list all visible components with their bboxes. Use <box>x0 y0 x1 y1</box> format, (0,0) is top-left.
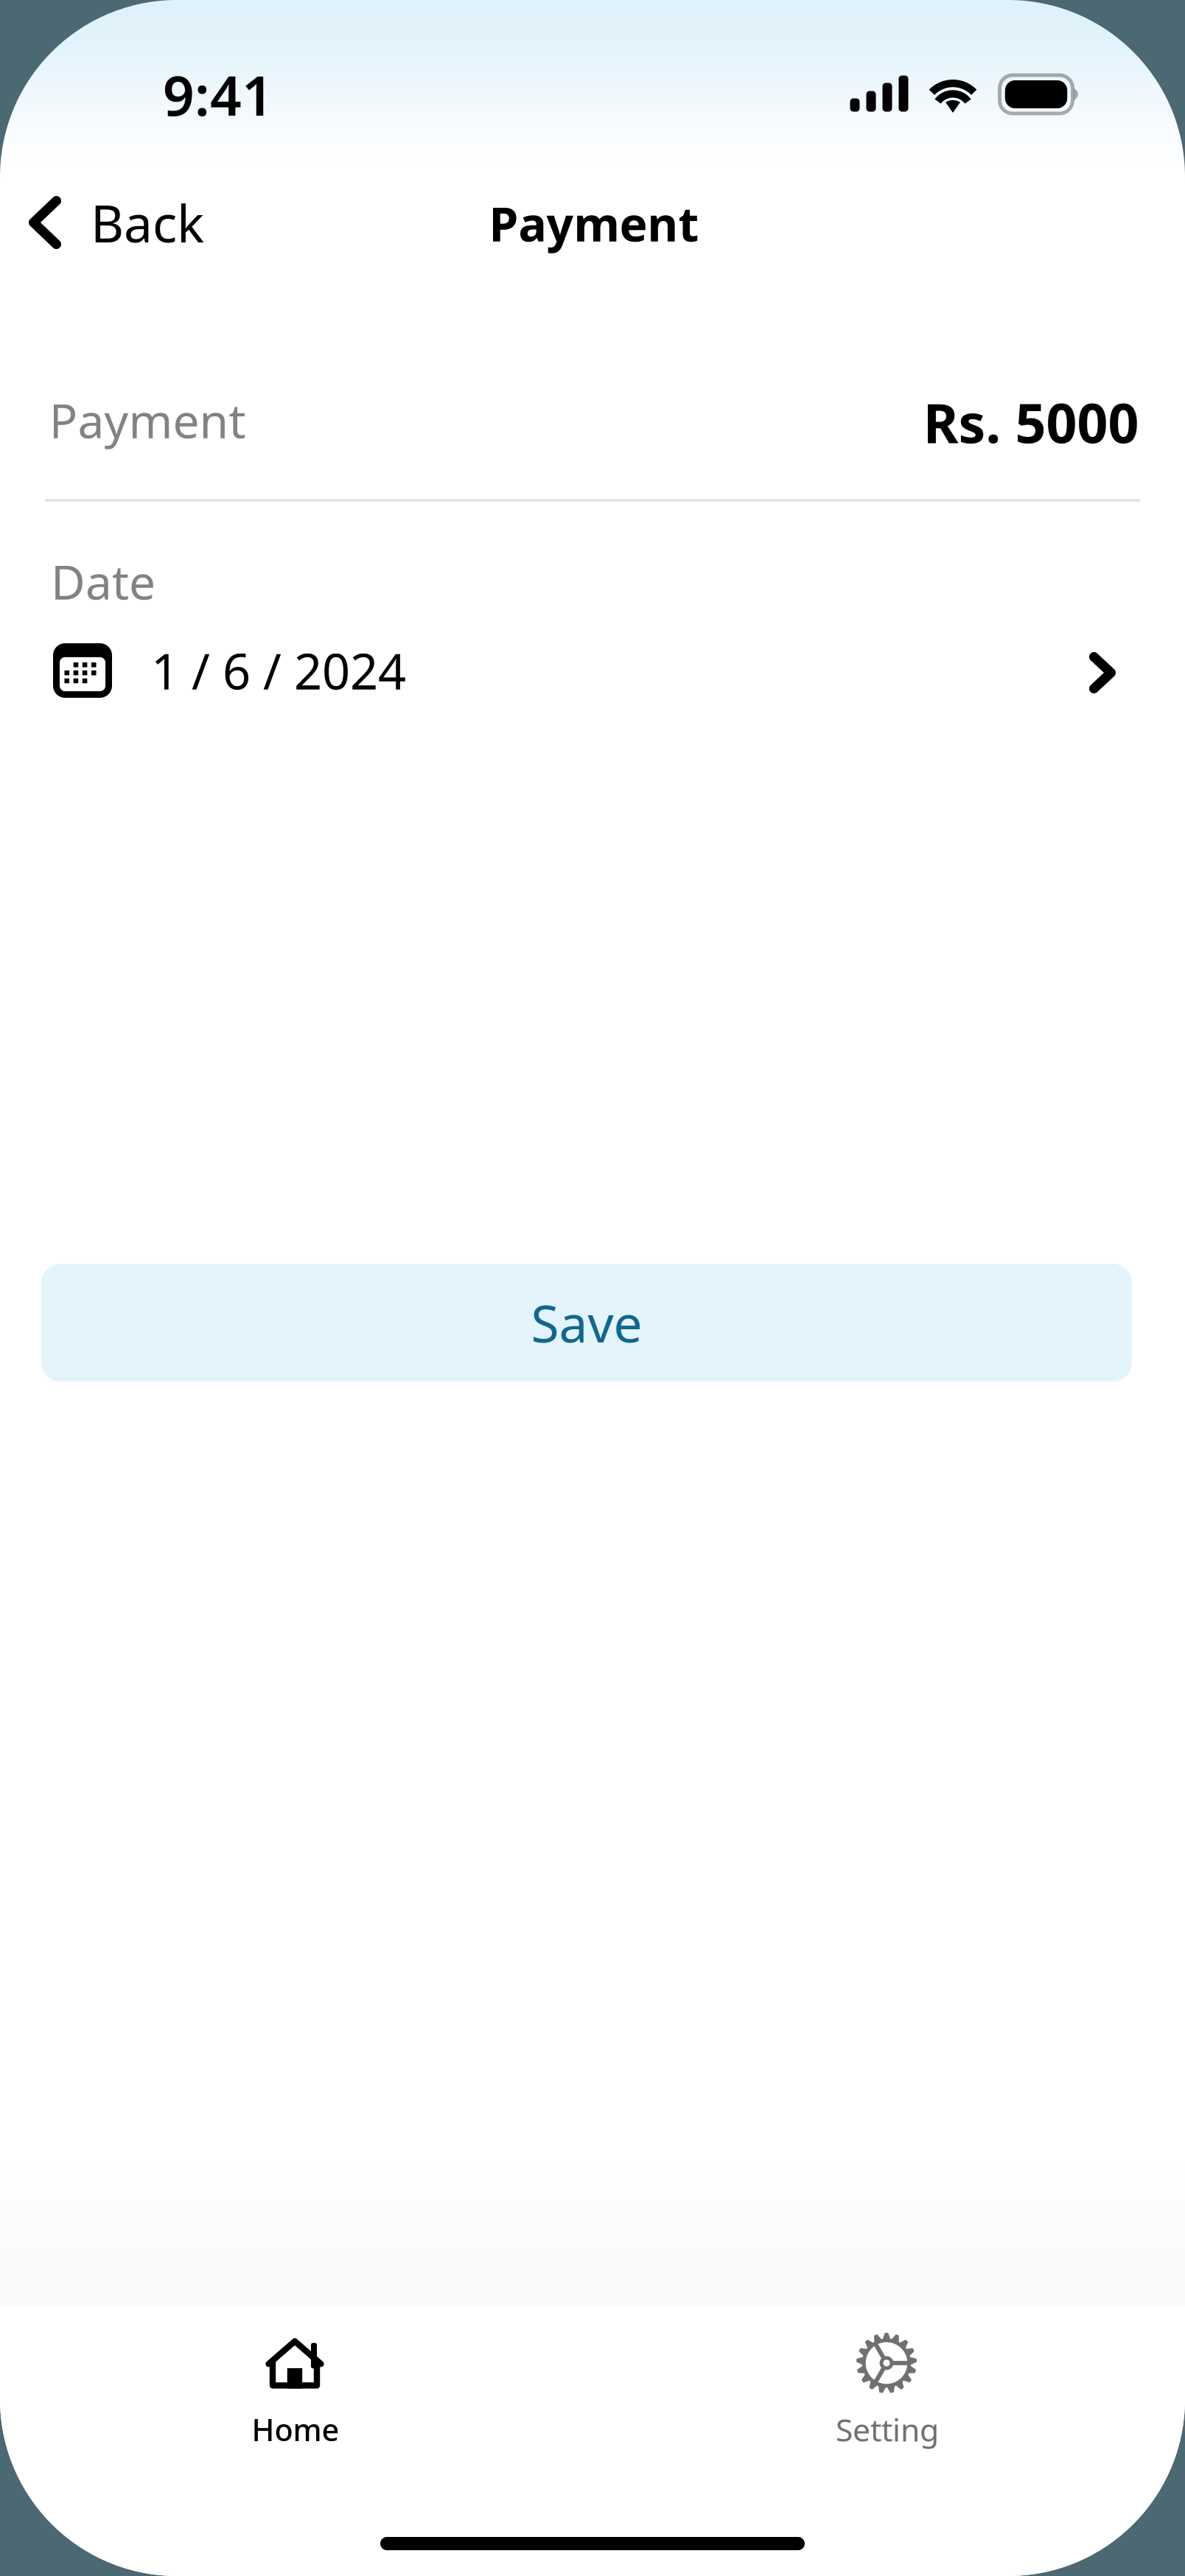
staticText: Payment <box>489 192 699 255</box>
staticText: Setting <box>836 2409 939 2450</box>
staticText: 1 / 6 / 2024 <box>151 638 406 703</box>
button[interactable]: Save <box>41 1264 1132 1382</box>
button[interactable]: 1 / 6 / 2024 <box>46 626 1144 715</box>
staticText: Rs. 5000 <box>923 386 1139 458</box>
button[interactable]: Setting <box>739 2314 1034 2483</box>
staticText: 9:41 <box>163 58 273 131</box>
button[interactable]: Back <box>0 174 221 271</box>
staticText: Home <box>252 2409 339 2450</box>
staticText: Date <box>51 550 155 613</box>
button[interactable]: Home <box>147 2314 442 2483</box>
staticText: Save <box>531 1289 642 1357</box>
staticText: Payment <box>49 389 246 451</box>
staticText: Back <box>91 189 204 256</box>
